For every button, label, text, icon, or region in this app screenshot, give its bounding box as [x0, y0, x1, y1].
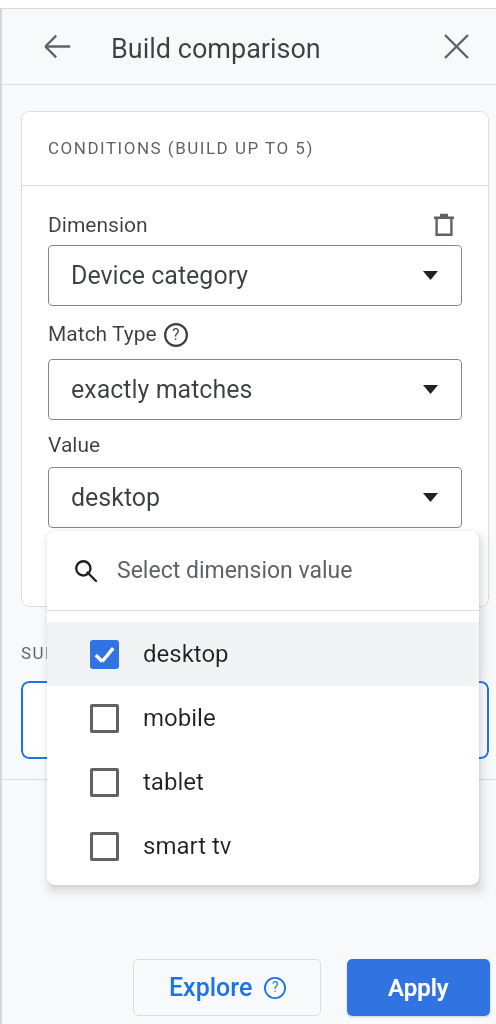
staticText: desktop — [71, 483, 161, 512]
staticText: Match Type — [48, 322, 157, 347]
staticText: CONDITIONS (BUILD UP TO 5) — [48, 138, 314, 158]
staticText: Dimension — [48, 213, 148, 238]
staticText: Value — [48, 433, 101, 458]
staticText: smart tv — [143, 832, 232, 860]
staticText: tablet — [143, 768, 204, 796]
staticText: Build comparison — [111, 33, 321, 65]
staticText: Device category — [71, 261, 249, 290]
staticText: ? — [272, 979, 279, 995]
staticText: Select dimension value — [117, 557, 353, 584]
button[interactable]: Back — [33, 22, 81, 70]
button[interactable]: mobile — [47, 686, 479, 750]
button[interactable]: Close — [432, 22, 480, 70]
button[interactable]: smart tv — [47, 814, 479, 878]
staticText: Apply — [388, 974, 449, 1002]
staticText: exactly matches — [71, 375, 253, 404]
button[interactable]: desktop — [47, 622, 479, 686]
button[interactable]: tablet — [47, 750, 479, 814]
button[interactable]: Select dimension value — [47, 531, 479, 610]
button[interactable]: Device category — [48, 245, 462, 306]
button[interactable]: Delete condition — [427, 208, 461, 242]
staticText: ? — [172, 325, 180, 344]
button[interactable]: desktop — [48, 467, 462, 528]
button[interactable]: Apply — [347, 959, 490, 1016]
staticText: mobile — [143, 704, 216, 732]
button[interactable]: exactly matches — [48, 359, 462, 420]
staticText: Explore — [169, 973, 253, 1002]
button[interactable]: Explore — [133, 959, 321, 1016]
staticText: desktop — [143, 640, 229, 668]
staticText: SUMMARY — [21, 643, 114, 663]
